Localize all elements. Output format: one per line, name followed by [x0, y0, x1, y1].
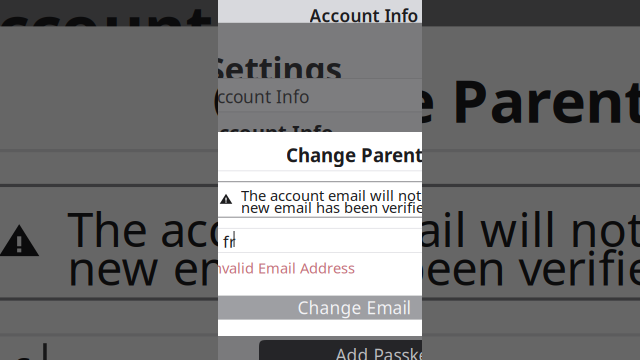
staticText: Account Info [309, 4, 418, 27]
staticText: Add Passkey [335, 343, 436, 360]
staticText: Settings [206, 47, 342, 91]
staticText: Invalid Email Address [208, 258, 355, 277]
button[interactable]: Account Info [195, 0, 304, 23]
button[interactable]: Account Info [195, 0, 298, 23]
button[interactable]: Account Info [195, 0, 298, 23]
staticText: Account Info [206, 85, 309, 108]
staticText: Change Parent's Email [286, 142, 492, 167]
staticText: Account Info [205, 119, 334, 146]
staticText: Settings [206, 47, 342, 91]
staticText: Change Parent's Email [286, 142, 492, 167]
staticText: Change Email [297, 296, 410, 319]
button[interactable]: Change Email [195, 132, 513, 156]
staticText: fr [223, 231, 236, 252]
button[interactable]: Account Info [195, 0, 304, 23]
staticText: Invalid Email Address [208, 258, 355, 277]
staticText: new email has been verified. [241, 197, 437, 217]
staticText: Change Email [297, 296, 410, 319]
staticText: Account Info [205, 119, 334, 146]
button[interactable]: Add Passkey [195, 0, 449, 30]
button[interactable]: Add Passkey [195, 0, 449, 30]
staticText: new email has been verified. [241, 197, 437, 217]
staticText: Account Info [206, 85, 309, 108]
staticText: Add Passkey [335, 343, 436, 360]
staticText: The account email will not change until … [241, 185, 536, 205]
staticText: fr [223, 231, 236, 252]
staticText: Account Info [309, 4, 418, 27]
staticText: The account email will not change until … [241, 185, 536, 205]
button[interactable]: Change Email [195, 132, 513, 156]
